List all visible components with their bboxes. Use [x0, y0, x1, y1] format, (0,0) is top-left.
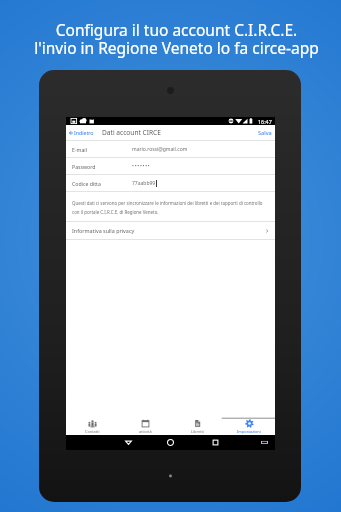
button[interactable]: Libretti: [171, 415, 223, 435]
staticText: Contatti: [85, 429, 100, 434]
button[interactable]: Indietro: [66, 125, 96, 140]
staticText: 77aabb99: [132, 180, 156, 187]
staticText: Impostazioni: [237, 429, 261, 434]
staticText: Questi dati ci servono per sincronizzare…: [72, 200, 271, 215]
button[interactable]: Back: [121, 435, 135, 450]
staticText: Codice ditta: [72, 180, 101, 187]
staticText: Configura il tuo account C.I.R.C.E. l'in…: [34, 19, 319, 59]
button[interactable]: Keyboard: [257, 435, 271, 450]
staticText: mario.rossi@gmail.com: [132, 146, 188, 153]
staticText: 16:47: [258, 118, 272, 125]
staticText: •••••••: [132, 163, 151, 170]
button[interactable]: Impostazioni: [223, 415, 275, 435]
button[interactable]: Contatti: [66, 415, 119, 435]
button[interactable]: Informativa sulla privacy: [66, 222, 275, 239]
button[interactable]: Recents: [208, 435, 222, 450]
button[interactable]: attività: [119, 415, 171, 435]
staticText: E-mail: [72, 146, 87, 153]
staticText: Informativa sulla privacy: [72, 227, 135, 234]
button[interactable]: Salva: [255, 125, 275, 140]
staticText: attività: [139, 429, 152, 434]
staticText: Indietro: [74, 129, 94, 136]
button[interactable]: Home: [163, 435, 177, 450]
button[interactable]: E-mail: [66, 141, 275, 157]
staticText: Password: [72, 163, 96, 170]
button[interactable]: Password: [66, 158, 275, 174]
staticText: Libretti: [191, 429, 204, 434]
staticText: Salva: [258, 129, 272, 137]
staticText: Dati account CIRCE: [102, 128, 161, 137]
button[interactable]: Codice ditta: [66, 175, 275, 191]
